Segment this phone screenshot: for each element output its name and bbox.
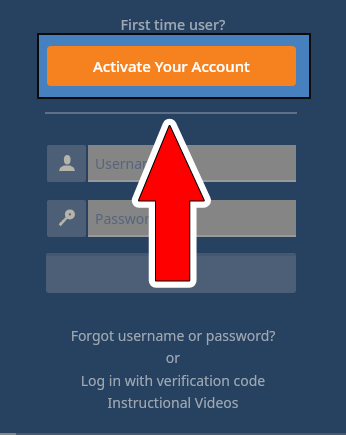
button[interactable]: Instructional Videos [0, 393, 346, 412]
staticText: First time user? [0, 15, 346, 34]
staticText: Activate Your Account [93, 56, 250, 76]
button[interactable]: Password [88, 200, 296, 237]
button[interactable]: or [0, 348, 346, 367]
button[interactable]: Username [88, 145, 296, 182]
button[interactable]: Activate Your Account [47, 46, 296, 86]
other: User [47, 145, 86, 182]
button[interactable]: Log in with verification code [0, 371, 346, 390]
other: Password [47, 200, 86, 237]
staticText: Username [95, 154, 164, 173]
staticText: Password [95, 209, 159, 228]
button[interactable]: Log In [46, 253, 296, 293]
button[interactable]: Forgot username or password? [0, 326, 346, 345]
